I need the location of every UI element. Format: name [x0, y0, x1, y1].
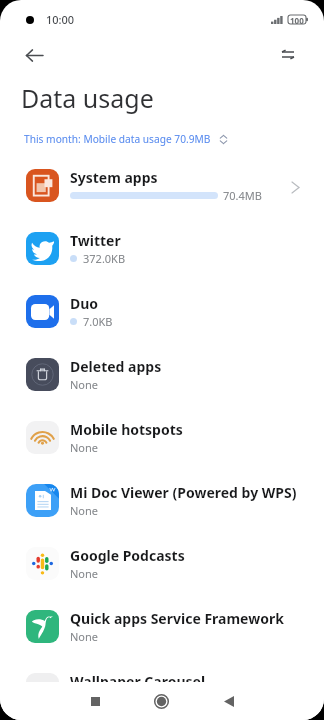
staticText: None	[70, 692, 99, 707]
staticText: 372.0KB	[83, 251, 126, 266]
staticText: Quick apps Service Framework	[70, 609, 284, 628]
button[interactable]: Google Podcasts	[0, 532, 324, 595]
button[interactable]: Data usage settings	[270, 36, 306, 72]
staticText: None	[70, 503, 99, 518]
button[interactable]: Wallpaper Carousel	[0, 658, 324, 720]
button[interactable]: Recents	[76, 682, 115, 720]
staticText: Data usage	[21, 81, 154, 115]
staticText: None	[70, 629, 99, 644]
staticText: None	[70, 566, 99, 581]
button[interactable]: Deleted apps	[0, 343, 324, 406]
button[interactable]: Back	[209, 682, 248, 720]
button[interactable]: System apps	[0, 154, 324, 217]
staticText: 7.0KB	[83, 314, 113, 329]
staticText: Wallpaper Carousel	[70, 672, 206, 691]
staticText: 100	[290, 15, 304, 26]
staticText: Twitter	[70, 231, 121, 250]
staticText: This month: Mobile data usage 70.9MB	[24, 132, 211, 146]
button[interactable]: Quick apps Service Framework	[0, 595, 324, 658]
staticText: Google Podcasts	[70, 546, 185, 565]
staticText: 70.4MB	[223, 188, 262, 203]
staticText: Deleted apps	[70, 357, 162, 376]
button[interactable]: Twitter	[0, 217, 324, 280]
staticText: None	[70, 440, 99, 455]
staticText: None	[70, 377, 99, 392]
staticText: Mi Doc Viewer (Powered by WPS)	[70, 483, 297, 502]
staticText: Duo	[70, 294, 99, 313]
button[interactable]: Duo	[0, 280, 324, 343]
button[interactable]: Home	[142, 682, 181, 720]
staticText: System apps	[70, 168, 158, 187]
button[interactable]: Mi Doc Viewer (Powered by WPS)	[0, 469, 324, 532]
staticText: Mobile hotspots	[70, 420, 183, 439]
button[interactable]: This month: Mobile data usage 70.9MB	[24, 132, 228, 146]
button[interactable]: Back	[16, 37, 52, 73]
staticText: 10:00	[46, 12, 75, 27]
button[interactable]: Mobile hotspots	[0, 406, 324, 469]
